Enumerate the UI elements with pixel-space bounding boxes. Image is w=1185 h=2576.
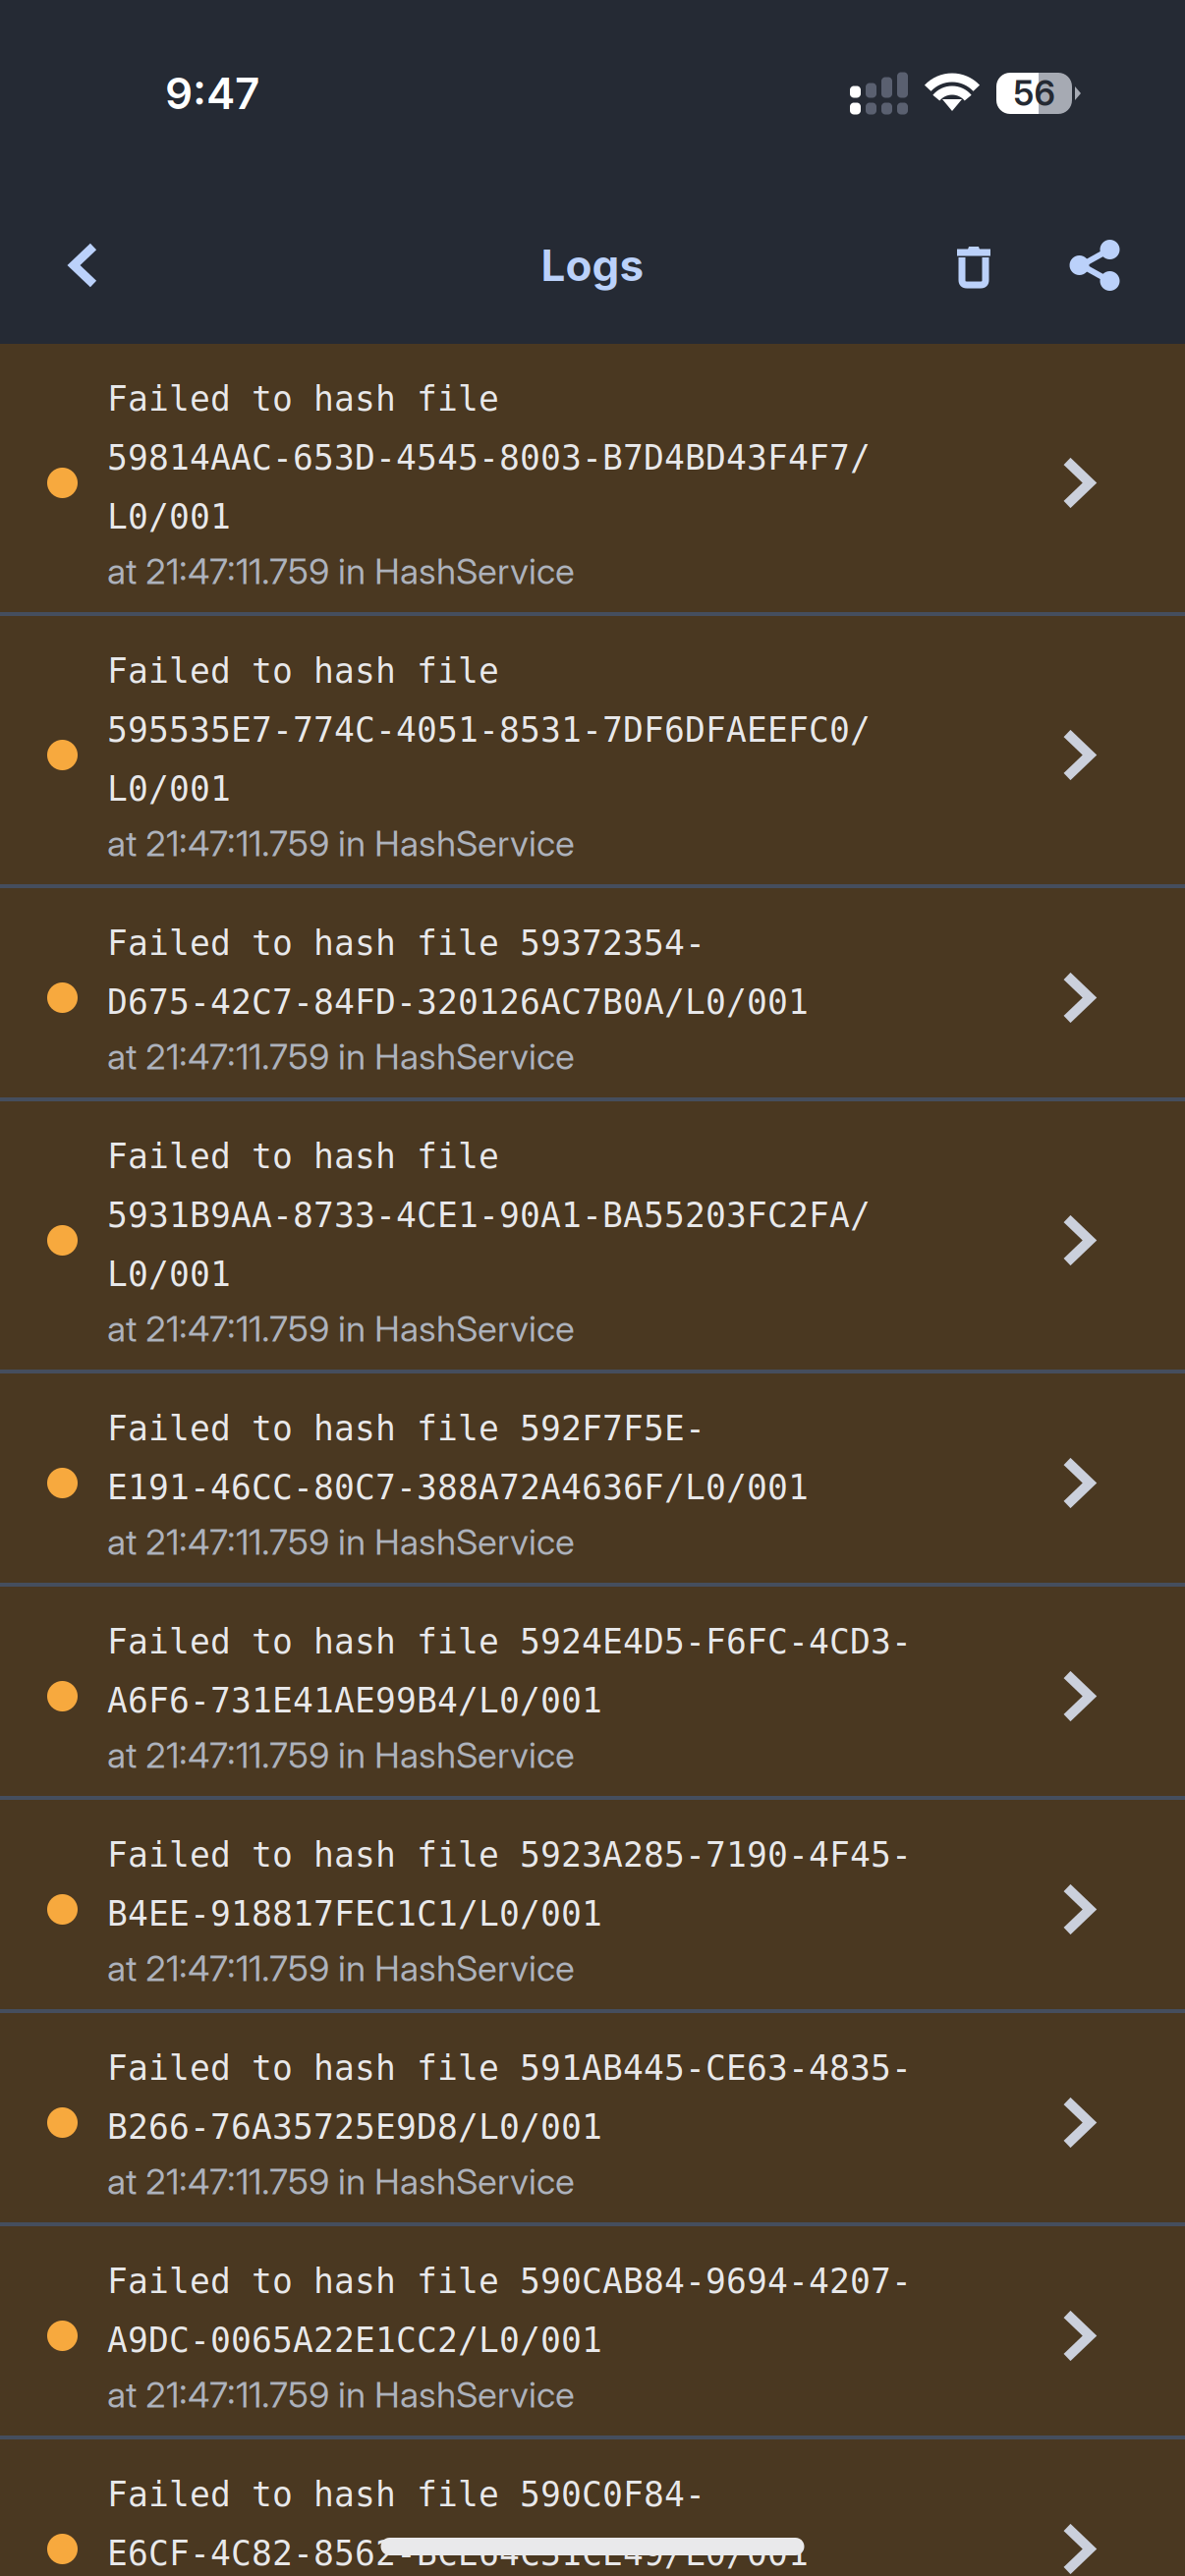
button[interactable]: Failed to hash file 590C0F84- [0,2439,1185,2576]
button[interactable]: Failed to hash file 592F7F5E- [0,1373,1185,1583]
button[interactable]: Delete logs [914,205,1034,325]
staticText: Failed to hash file 592F7F5E- [107,1409,705,1448]
staticText: 595535E7-774C-4051-8531-7DF6DFAEEFC0/ [107,710,871,750]
staticText: Failed to hash file 5924E4D5-F6FC-4CD3- [107,1622,912,1662]
button[interactable]: Failed to hash file 591AB445-CE63-4835- [0,2013,1185,2222]
staticText: L0/001 [107,769,231,809]
staticText: at 21:47:11.759 in HashService [107,1734,575,1777]
staticText: at 21:47:11.759 in HashService [107,550,575,593]
staticText: Failed to hash file [107,651,499,691]
button[interactable]: Failed to hash file [0,1101,1185,1370]
staticText: Logs [541,239,644,291]
button[interactable]: Share logs [1034,205,1156,325]
staticText: 5931B9AA-8733-4CE1-90A1-BA55203FC2FA/ [107,1195,871,1235]
staticText: 9:47 [165,67,259,119]
staticText: at 21:47:11.759 in HashService [107,822,575,865]
staticText: A9DC-0065A22E1CC2/L0/001 [107,2320,602,2360]
staticText: B266-76A35725E9D8/L0/001 [107,2107,602,2147]
staticText: Failed to hash file 5923A285-7190-4F45- [107,1835,912,1875]
staticText: 56 [1014,73,1055,114]
staticText: Failed to hash file [107,1137,499,1176]
button[interactable]: Failed to hash file 5923A285-7190-4F45- [0,1800,1185,2009]
button[interactable]: Failed to hash file [0,344,1185,612]
button[interactable]: Failed to hash file [0,616,1185,884]
button[interactable]: Failed to hash file 590CAB84-9694-4207- [0,2226,1185,2436]
staticText: D675-42C7-84FD-320126AC7B0A/L0/001 [107,982,809,1022]
staticText: L0/001 [107,497,231,537]
staticText: Failed to hash file 591AB445-CE63-4835- [107,2048,912,2088]
staticText: Failed to hash file 590CAB84-9694-4207- [107,2261,912,2301]
staticText: A6F6-731E41AE99B4/L0/001 [107,1681,602,1720]
staticText: at 21:47:11.759 in HashService [107,1035,575,1078]
staticText: L0/001 [107,1254,231,1294]
staticText: at 21:47:11.759 in HashService [107,2160,575,2203]
staticText: Failed to hash file [107,379,499,419]
staticText: E191-46CC-80C7-388A72A4636F/L0/001 [107,1468,809,1507]
staticText: Failed to hash file 590C0F84- [107,2475,705,2514]
button[interactable]: Failed to hash file 5924E4D5-F6FC-4CD3- [0,1587,1185,1796]
staticText: 59814AAC-653D-4545-8003-B7D4BD43F4F7/ [107,438,871,478]
staticText: at 21:47:11.759 in HashService [107,1521,575,1563]
staticText: at 21:47:11.759 in HashService [107,2373,575,2416]
staticText: at 21:47:11.759 in HashService [107,1947,575,1990]
staticText: E6CF-4C82-8562-BCE64C31CE49/L0/001 [107,2534,809,2573]
staticText: Failed to hash file 59372354- [107,923,705,963]
staticText: at 21:47:11.759 in HashService [107,1307,575,1350]
button[interactable]: Failed to hash file 59372354- [0,888,1185,1097]
button[interactable]: Back [26,205,141,325]
staticText: B4EE-918817FEC1C1/L0/001 [107,1894,602,1934]
